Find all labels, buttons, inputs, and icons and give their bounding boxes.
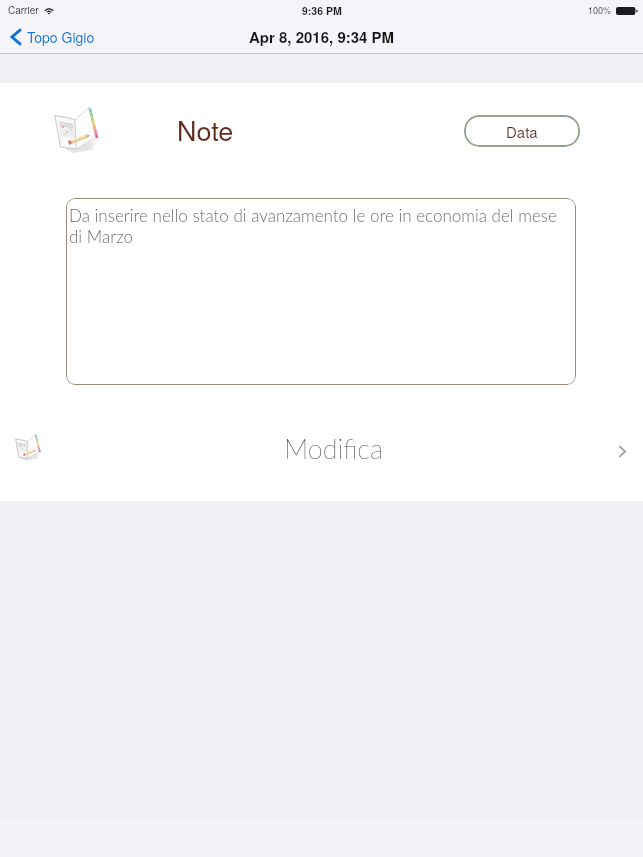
staticText: 100%: [588, 4, 612, 17]
button[interactable]: Data: [464, 115, 580, 147]
button[interactable]: Da inserire nello stato di avanzamento l…: [66, 198, 576, 385]
staticText: Topo Gigio: [27, 27, 95, 47]
staticText: Note: [177, 110, 234, 149]
other: Battery: [616, 7, 638, 15]
other: Open: [619, 446, 626, 457]
button[interactable]: Topo Gigio: [0, 22, 105, 52]
staticText: 9:36 PM: [302, 3, 342, 18]
staticText: Apr 8, 2016, 9:34 PM: [249, 26, 395, 47]
staticText: Da inserire nello stato di avanzamento l…: [69, 205, 569, 247]
staticText: Modifica: [284, 432, 383, 464]
staticText: Data: [506, 121, 538, 142]
other: Wi-Fi: [44, 6, 54, 14]
button[interactable]: Modifica: [0, 420, 643, 480]
staticText: Carrier: [8, 3, 39, 17]
